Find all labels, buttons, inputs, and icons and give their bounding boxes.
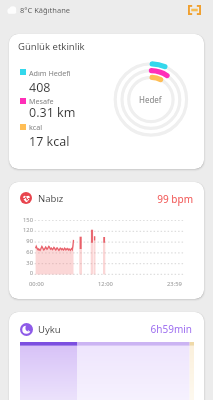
staticText: kcal: [29, 122, 43, 132]
staticText: 23:59: [167, 280, 182, 288]
staticText: Hedef: [139, 94, 162, 105]
staticText: 12:00: [98, 280, 113, 288]
staticText: Adım Hedefi: [29, 68, 71, 78]
staticText: Günlük etkinlik: [18, 40, 85, 53]
button[interactable]: Nabız: [9, 182, 204, 299]
staticText: Mesafe: [29, 96, 54, 106]
staticText: 60: [9, 248, 33, 256]
staticText: 0.31 km: [29, 104, 76, 121]
button[interactable]: 8°C Kâğıthane: [5, 3, 73, 17]
staticText: 0: [9, 269, 33, 277]
staticText: 120: [9, 226, 33, 234]
staticText: 00:00: [29, 280, 44, 288]
button[interactable]: Günlük etkinlik: [9, 34, 204, 169]
staticText: 99 bpm: [148, 192, 193, 206]
staticText: 150: [9, 216, 33, 224]
staticText: Uyku: [38, 323, 61, 336]
staticText: 90: [9, 237, 33, 245]
staticText: 8°C Kâğıthane: [20, 5, 71, 15]
staticText: 17 kcal: [29, 133, 70, 150]
staticText: Nabız: [38, 192, 64, 205]
staticText: 408: [29, 79, 51, 96]
staticText: 30: [9, 259, 33, 267]
button[interactable]: Connected watch: [186, 2, 202, 18]
button[interactable]: Uyku: [9, 312, 204, 400]
staticText: 6h59min: [142, 322, 192, 336]
